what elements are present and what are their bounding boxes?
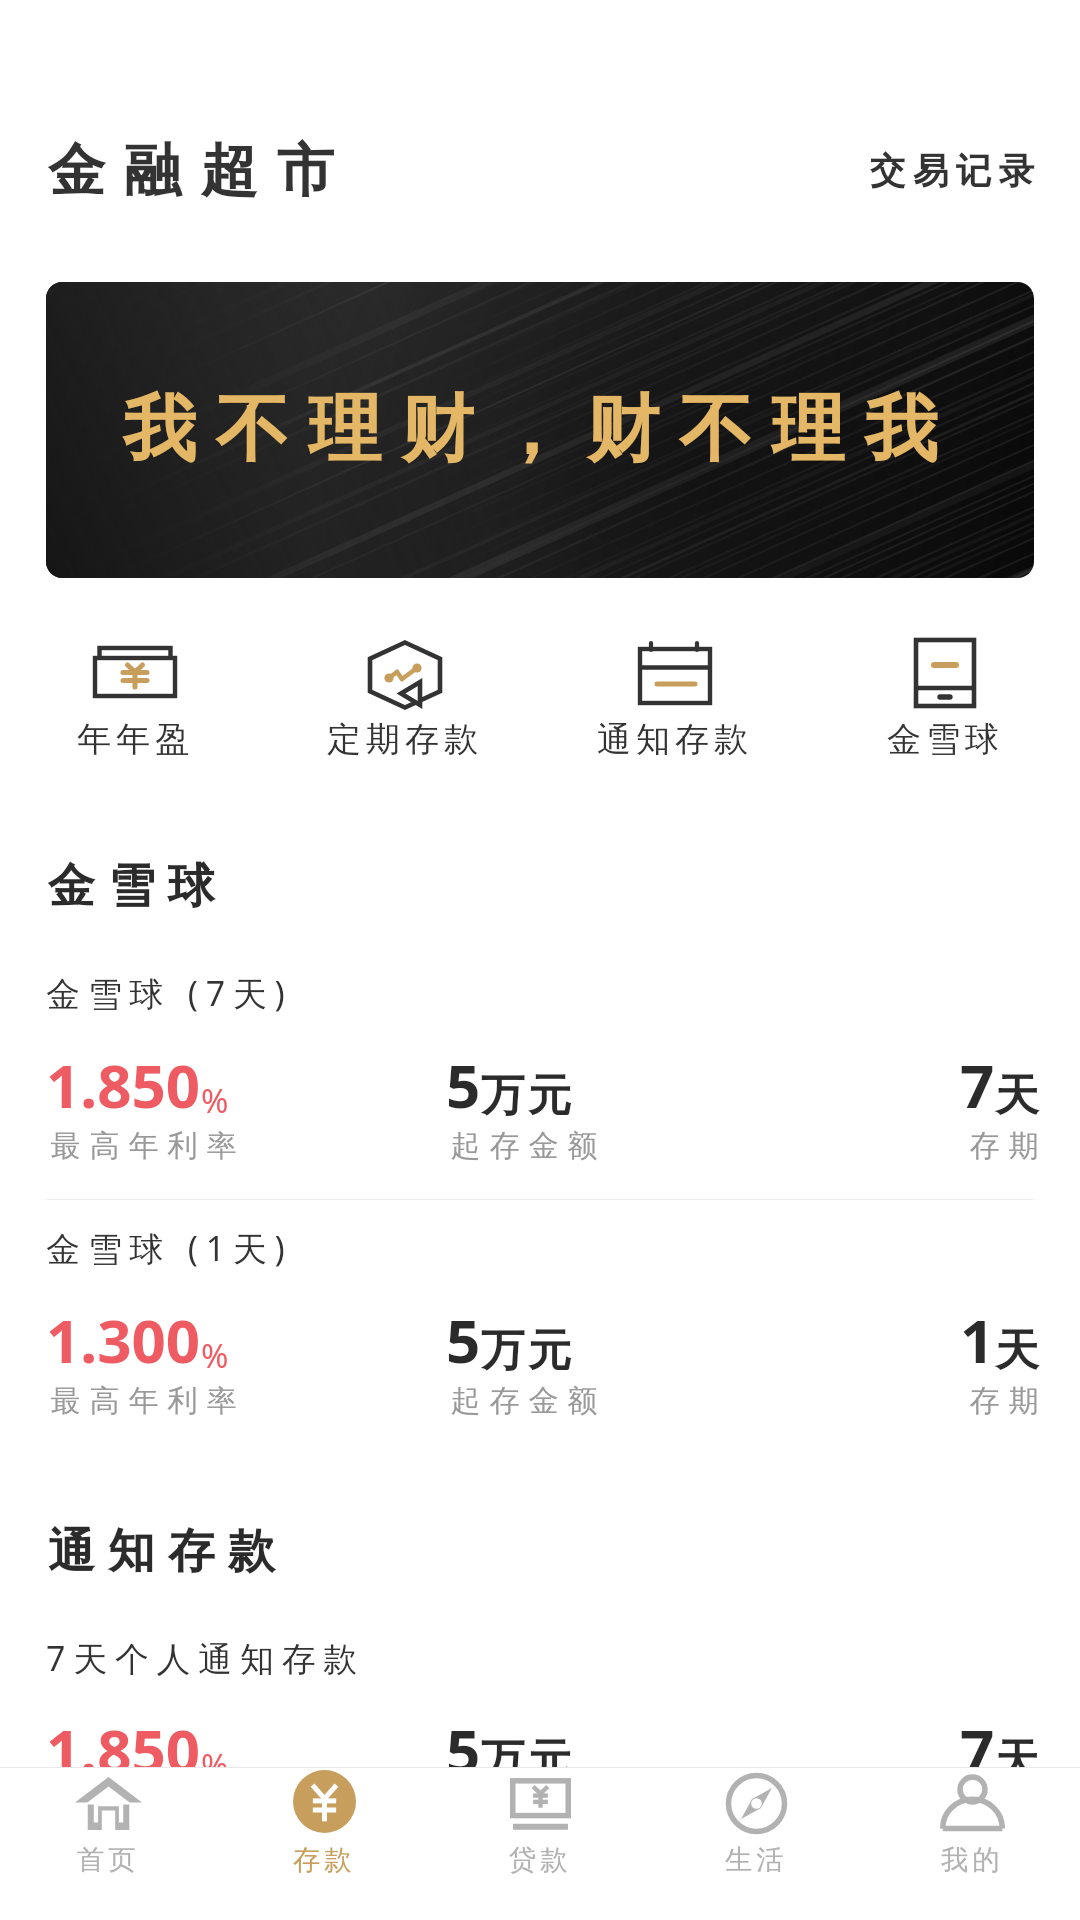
staticText: 天 [995, 1068, 1043, 1123]
staticText: 我不理财，财不理我 [123, 384, 958, 476]
staticText: 7 [960, 1709, 995, 1791]
staticText: % [201, 1078, 229, 1123]
staticText: % [201, 1333, 229, 1378]
staticText: 金雪球 [887, 718, 1004, 761]
staticText: 存期 [965, 1382, 1043, 1420]
staticText: 最高年利率 [46, 1127, 241, 1165]
staticText: 万元 [481, 1733, 576, 1788]
staticText: % [201, 1743, 229, 1788]
staticText: 5 [446, 1709, 481, 1791]
button[interactable]: 7天个人通知存款 [0, 1635, 1080, 1864]
staticText: 7天个人通知存款 [46, 1635, 366, 1681]
staticText: 最高年利率 [46, 1792, 241, 1830]
staticText: 金雪球 (1天) [46, 1225, 293, 1271]
staticText: 天 [995, 1733, 1043, 1788]
button[interactable]: Life [648, 1768, 864, 1920]
button[interactable]: 定期存款 [270, 631, 540, 770]
staticText: 金雪球 (7天) [46, 970, 293, 1016]
staticText: 通知存款 [597, 718, 753, 761]
staticText: 最高年利率 [46, 1382, 241, 1420]
button[interactable]: Loans [432, 1768, 648, 1920]
staticText: 1.300 [46, 1299, 201, 1381]
staticText: 7 [960, 1044, 995, 1126]
staticText: 1 [960, 1299, 995, 1381]
staticText: 万元 [481, 1323, 576, 1378]
staticText: 首页 [77, 1843, 140, 1877]
staticText: 通知存款 [48, 1522, 288, 1581]
staticText: 金融超市 [48, 135, 353, 207]
staticText: 年年盈 [77, 718, 194, 761]
staticText: 存期 [965, 1792, 1043, 1830]
staticText: 1.850 [46, 1044, 201, 1126]
staticText: 存款 [293, 1843, 356, 1877]
button[interactable]: 金雪球 (7天) [0, 970, 1080, 1199]
button[interactable]: Promotion banner [46, 282, 1034, 578]
staticText: 起存金额 [446, 1792, 602, 1830]
button[interactable]: 金雪球 [810, 631, 1080, 770]
button[interactable]: 金雪球 (1天) [0, 1200, 1080, 1454]
staticText: 交易记录 [870, 149, 1042, 194]
button[interactable]: Deposits [216, 1768, 432, 1920]
button[interactable]: Profile [864, 1768, 1080, 1920]
staticText: 1.850 [46, 1709, 201, 1791]
staticText: 5 [446, 1044, 481, 1126]
staticText: 起存金额 [446, 1127, 602, 1165]
staticText: 万元 [481, 1068, 576, 1123]
staticText: 我的 [941, 1843, 1004, 1877]
staticText: 起存金额 [446, 1382, 602, 1420]
staticText: 存期 [965, 1127, 1043, 1165]
staticText: 定期存款 [327, 718, 483, 761]
staticText: 贷款 [509, 1843, 572, 1877]
button[interactable]: Home [0, 1768, 216, 1920]
button[interactable]: 年年盈 [0, 631, 270, 770]
staticText: 金雪球 [48, 857, 228, 916]
staticText: 生活 [725, 1843, 788, 1877]
button[interactable]: 交易记录 [824, 119, 1080, 224]
button[interactable]: 通知存款 [540, 631, 810, 770]
staticText: 5 [446, 1299, 481, 1381]
staticText: 天 [995, 1323, 1043, 1378]
